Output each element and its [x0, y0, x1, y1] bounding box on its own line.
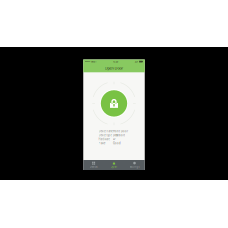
button[interactable]: Open [104, 160, 124, 170]
staticText: 10:26 [113, 60, 118, 63]
button[interactable]: Unlock door [91, 81, 136, 126]
staticText: AT&T [91, 60, 96, 63]
staticText: Devices [89, 165, 97, 169]
button[interactable]: Settings [124, 160, 145, 170]
staticText: 92% [134, 60, 138, 63]
staticText: Device type [98, 134, 111, 137]
staticText: Good [113, 142, 121, 145]
staticText: Power [98, 142, 105, 145]
staticText: v2 [113, 138, 115, 141]
staticText: Open Door [104, 65, 123, 71]
staticText: Settings [129, 165, 139, 169]
staticText: Front Door [113, 130, 128, 133]
staticText: Open [110, 165, 117, 169]
button[interactable]: Devices [83, 160, 104, 170]
staticText: Deadbolt [113, 134, 125, 137]
staticText: Device name [98, 130, 112, 133]
staticText: Hardware [98, 138, 109, 141]
